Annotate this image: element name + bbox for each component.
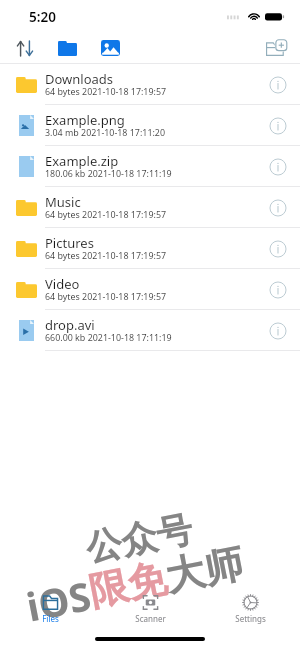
button[interactable]: Info — [255, 228, 300, 269]
button[interactable]: Example.png — [0, 105, 300, 146]
button[interactable]: Music — [0, 187, 300, 228]
button[interactable]: Photos — [95, 32, 125, 64]
staticText: 660.00 kb 2021-10-18 17:11:19 — [45, 331, 172, 343]
button[interactable]: Downloads — [0, 64, 300, 105]
staticText: Example.png — [45, 111, 125, 129]
button[interactable]: Info — [255, 310, 300, 351]
button[interactable]: New folder — [259, 32, 293, 64]
button[interactable]: Settings — [200, 590, 300, 632]
staticText: Video — [45, 275, 80, 293]
staticText: 大师 — [161, 538, 247, 601]
button[interactable]: Info — [255, 187, 300, 228]
staticText: 64 bytes 2021-10-18 17:19:57 — [45, 290, 167, 302]
button[interactable]: Folders — [52, 32, 82, 64]
staticText: 公众号 — [82, 506, 196, 571]
staticText: iOS — [22, 568, 95, 632]
staticText: 限免 — [85, 553, 171, 616]
staticText: Example.zip — [45, 152, 119, 170]
staticText: 180.06 kb 2021-10-18 17:11:19 — [45, 167, 172, 179]
button[interactable]: Info — [255, 146, 300, 187]
staticText: Downloads — [45, 70, 114, 88]
button[interactable]: Info — [255, 105, 300, 146]
button[interactable]: Pictures — [0, 228, 300, 269]
button[interactable]: Video — [0, 269, 300, 310]
staticText: Music — [45, 193, 81, 211]
staticText: 5:20 — [29, 8, 56, 26]
button[interactable]: Info — [255, 64, 300, 105]
staticText: Settings — [235, 613, 266, 624]
button[interactable]: Sort — [10, 32, 40, 64]
button[interactable]: Info — [255, 269, 300, 310]
button[interactable]: drop.avi — [0, 310, 300, 351]
staticText: 64 bytes 2021-10-18 17:19:57 — [45, 85, 167, 97]
staticText: 64 bytes 2021-10-18 17:19:57 — [45, 208, 167, 220]
staticText: drop.avi — [45, 316, 95, 334]
button[interactable]: Files — [0, 590, 100, 632]
staticText: Pictures — [45, 234, 94, 252]
staticText: Scanner — [135, 613, 166, 624]
staticText: 64 bytes 2021-10-18 17:19:57 — [45, 249, 167, 261]
button[interactable]: Scanner — [100, 590, 200, 632]
staticText: 3.04 mb 2021-10-18 17:11:20 — [45, 126, 166, 138]
staticText: Files — [42, 613, 59, 624]
button[interactable]: Example.zip — [0, 146, 300, 187]
